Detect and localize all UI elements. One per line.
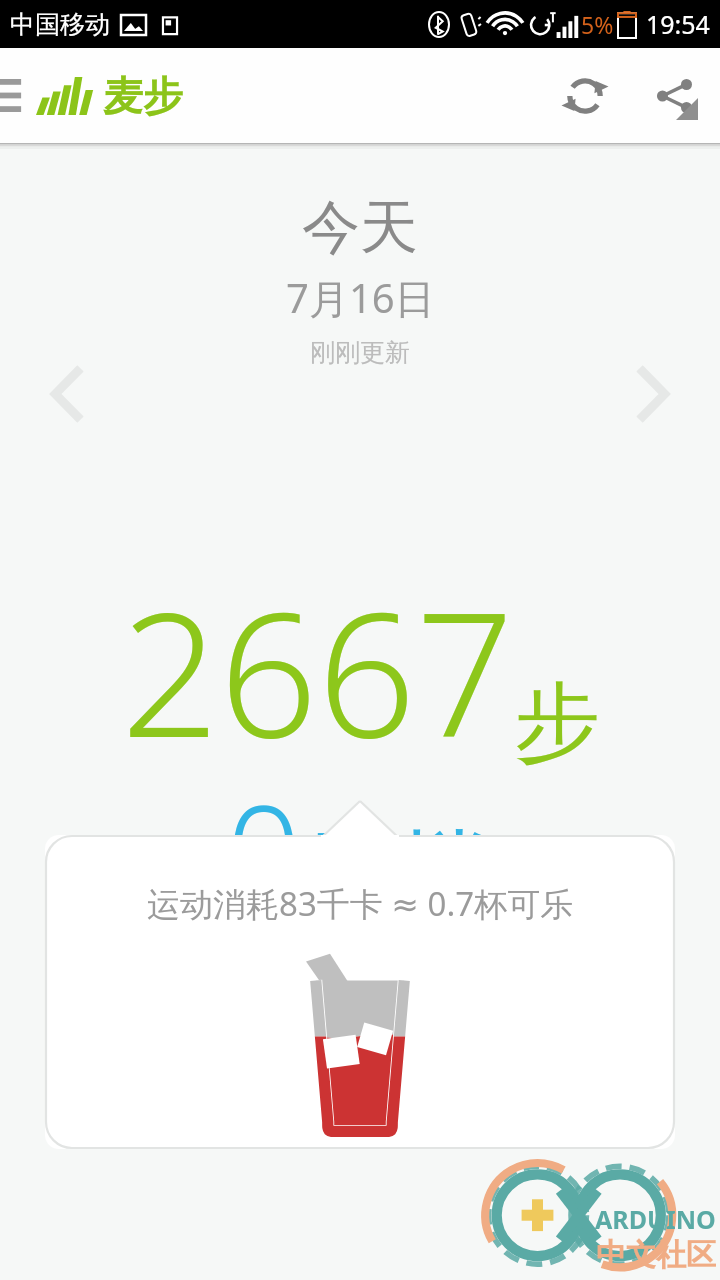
staticText: 层楼 bbox=[302, 816, 494, 937]
staticText: 5% bbox=[581, 9, 614, 40]
staticText: 刚刚更新 bbox=[310, 337, 410, 368]
button[interactable]: Next day bbox=[618, 349, 688, 439]
button[interactable]: 运动消耗83千卡 ≈ 0.7杯可乐 bbox=[45, 835, 675, 1149]
button[interactable]: Share bbox=[628, 48, 720, 143]
staticText: 麦步 bbox=[103, 71, 183, 121]
staticText: 0 bbox=[226, 761, 302, 941]
staticText: 中国移动 bbox=[10, 9, 110, 40]
staticText: 19:54 bbox=[646, 7, 710, 41]
staticText: 2667 bbox=[121, 553, 514, 787]
staticText: 今天 bbox=[302, 191, 418, 264]
staticText: 步 bbox=[514, 669, 600, 777]
staticText: 7月16日 bbox=[286, 270, 435, 325]
staticText: 运动消耗83千卡 ≈ 0.7杯可乐 bbox=[147, 881, 574, 926]
staticText: 中文社区 bbox=[596, 1236, 716, 1274]
button[interactable]: Refresh bbox=[542, 48, 628, 143]
staticText: ARDUINO bbox=[595, 1202, 716, 1236]
button[interactable]: Previous day bbox=[32, 349, 102, 439]
button[interactable]: Menu bbox=[0, 48, 46, 143]
